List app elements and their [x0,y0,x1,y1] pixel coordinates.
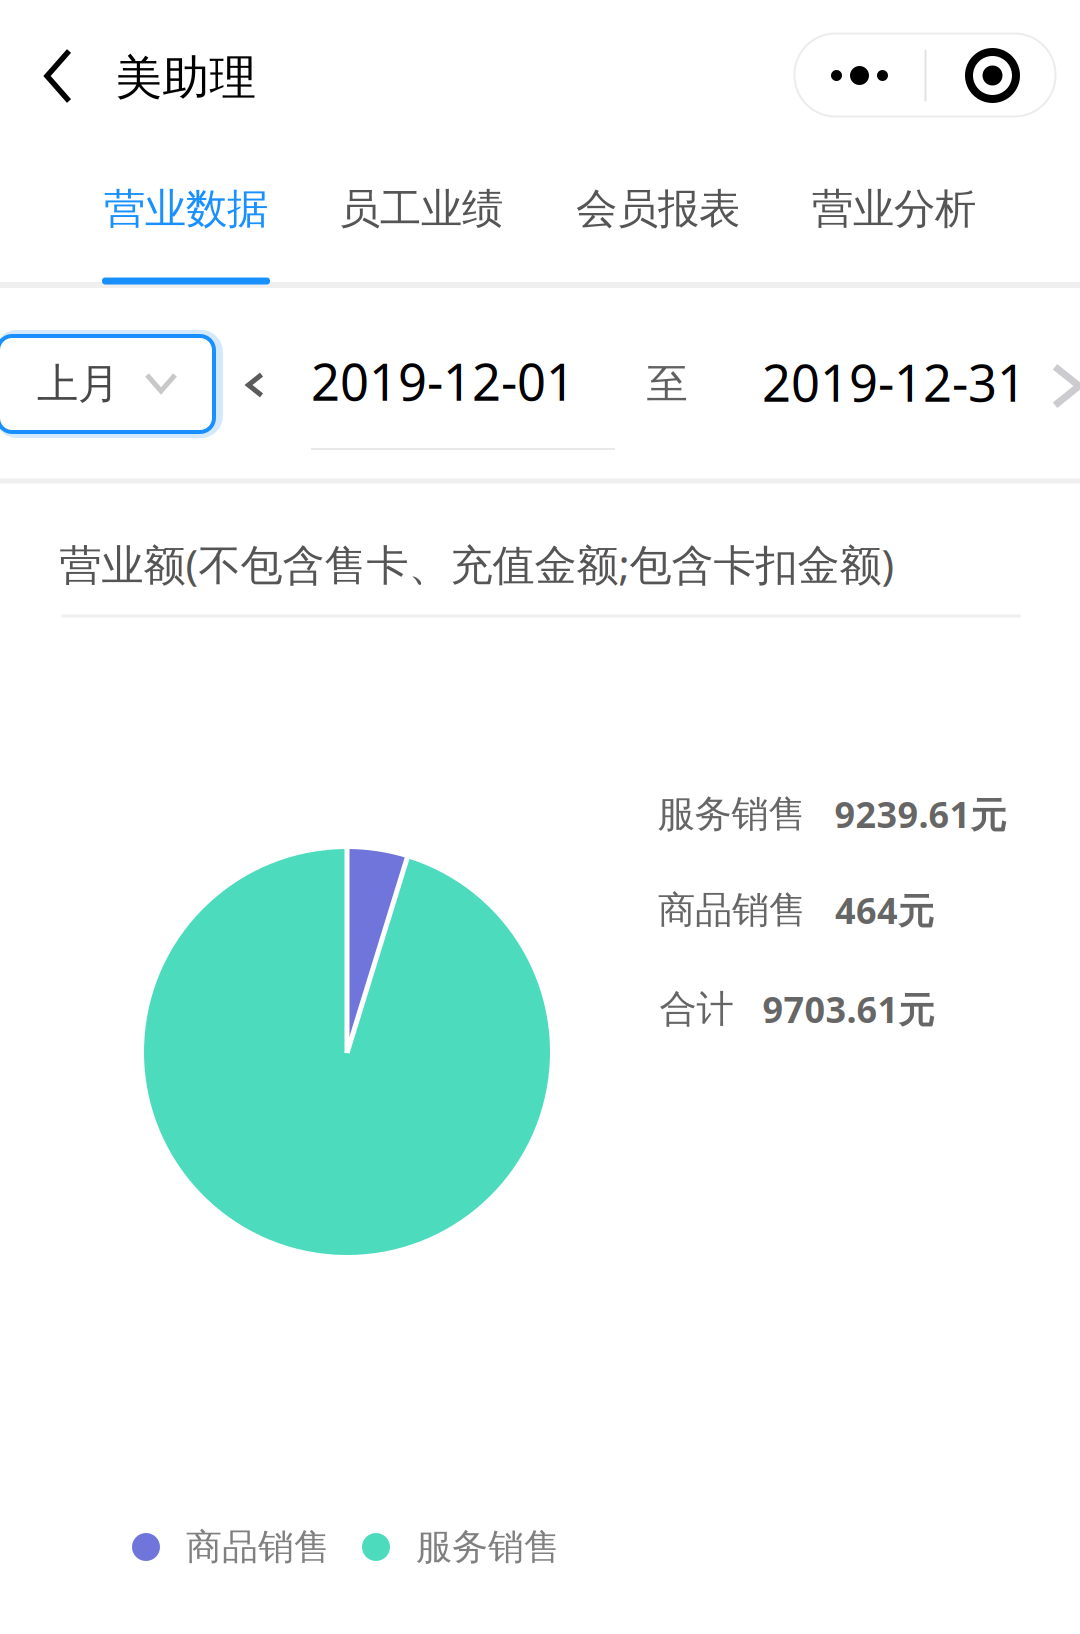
staticText: 2019-12-01 [311,347,575,415]
button[interactable]: Next period [1030,337,1080,435]
button[interactable]: 营业分析 [799,155,989,285]
staticText: 营业分析 [812,184,976,234]
staticText: 服务销售 [416,1525,560,1569]
button[interactable]: 营业数据 [91,155,281,285]
button[interactable]: Back [8,21,108,131]
staticText: 服务销售 [657,791,805,837]
button[interactable]: 员工业绩 [326,155,516,285]
staticText: 464元 [835,886,934,934]
staticText: 会员报表 [576,184,740,234]
staticText: 商品销售 [186,1525,330,1569]
button[interactable]: 2019-12-31 [739,312,1049,452]
staticText: 2019-12-31 [762,348,1026,416]
staticText: 员工业绩 [339,184,503,234]
staticText: 营业数据 [104,184,268,234]
button[interactable]: 2019-12-01 [288,311,598,451]
staticText: 商品销售 [658,887,806,933]
staticText: 合计 [659,986,733,1032]
staticText: 9703.61元 [762,985,934,1033]
button[interactable]: 上月 [0,324,226,444]
staticText: 上月 [37,359,119,409]
staticText: 至 [646,359,687,409]
button[interactable]: More options [794,33,1055,116]
button[interactable]: Previous period [220,342,290,428]
staticText: 美助理 [115,49,256,107]
button[interactable]: 会员报表 [563,155,753,285]
staticText: 9239.61元 [834,790,1006,838]
staticText: 营业额(不包含售卡、充值金额;包含卡扣金额) [59,535,894,593]
